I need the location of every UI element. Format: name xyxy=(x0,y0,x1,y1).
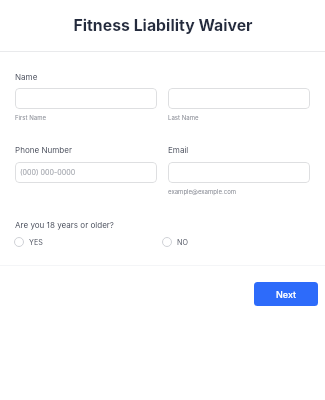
staticText: Fitness Liability Waiver xyxy=(73,16,253,35)
button[interactable] xyxy=(15,88,157,109)
button[interactable]: Next xyxy=(254,282,318,306)
staticText: example@example.com xyxy=(168,188,237,195)
staticText: YES xyxy=(29,238,43,247)
staticText: Name xyxy=(15,72,38,82)
button[interactable]: YES xyxy=(14,237,43,247)
staticText: Next xyxy=(276,289,297,300)
staticText: (000) 000-0000 xyxy=(20,168,76,177)
button[interactable]: (000) 000-0000 xyxy=(15,162,157,183)
button[interactable] xyxy=(168,162,310,183)
button[interactable]: NO xyxy=(162,237,188,247)
staticText: NO xyxy=(177,238,188,247)
staticText: Last Name xyxy=(168,114,199,121)
button[interactable] xyxy=(168,88,310,109)
staticText: Are you 18 years or older? xyxy=(15,220,114,230)
staticText: Email xyxy=(168,145,189,155)
staticText: Phone Number xyxy=(15,145,72,155)
staticText: First Name xyxy=(15,114,46,121)
